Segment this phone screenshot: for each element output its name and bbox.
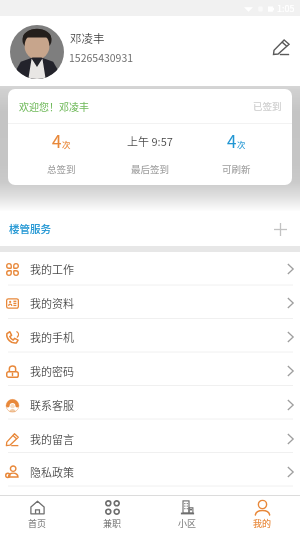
staticText: 次 <box>62 138 71 150</box>
button[interactable]: 4 <box>185 124 287 185</box>
staticText: 次 <box>237 138 246 150</box>
staticText: 已签到 <box>253 99 282 113</box>
button[interactable]: 隐私政策 <box>0 456 300 487</box>
staticText: 4 <box>52 128 62 153</box>
staticText: 兼职 <box>103 517 122 530</box>
button[interactable]: 我的资料 <box>0 286 300 320</box>
button[interactable]: 我的 <box>225 496 300 533</box>
staticText: 可刷新 <box>222 162 251 176</box>
button[interactable]: 我的工作 <box>0 252 300 286</box>
button[interactable]: 邓凌丰 <box>0 16 300 86</box>
staticText: 总签到 <box>47 162 76 176</box>
staticText: 1:05 <box>277 2 295 15</box>
button[interactable]: Add service <box>269 218 291 240</box>
staticText: 隐私政策 <box>30 464 74 480</box>
button[interactable]: 我的留言 <box>0 422 300 456</box>
staticText: 我的手机 <box>30 329 74 345</box>
staticText: 我的留言 <box>30 431 74 447</box>
staticText: 我的密码 <box>30 363 74 379</box>
staticText: 我的资料 <box>30 295 74 311</box>
button[interactable]: 联系客服 <box>0 388 300 422</box>
staticText: 15265430931 <box>69 50 134 65</box>
staticText: 联系客服 <box>30 397 74 413</box>
staticText: 我的 <box>253 517 272 530</box>
staticText: 邓凌丰 <box>70 30 105 47</box>
staticText: 首页 <box>28 517 47 530</box>
staticText: 小区 <box>178 517 197 530</box>
button[interactable]: 我的密码 <box>0 354 300 388</box>
staticText: 最后签到 <box>131 162 170 176</box>
button[interactable]: 4 <box>8 124 114 185</box>
button[interactable]: 小区 <box>150 496 225 533</box>
button[interactable]: Edit profile <box>268 34 294 60</box>
staticText: 楼管服务 <box>9 221 51 236</box>
button[interactable]: 兼职 <box>75 496 150 533</box>
button[interactable]: 我的手机 <box>0 320 300 354</box>
staticText: 上午 9:57 <box>127 133 173 149</box>
button[interactable]: 首页 <box>0 496 75 533</box>
staticText: 4 <box>227 128 237 153</box>
button[interactable]: 上午 9:57 <box>114 124 186 185</box>
staticText: 我的工作 <box>30 261 74 277</box>
staticText: 欢迎您！邓凌丰 <box>19 99 89 113</box>
